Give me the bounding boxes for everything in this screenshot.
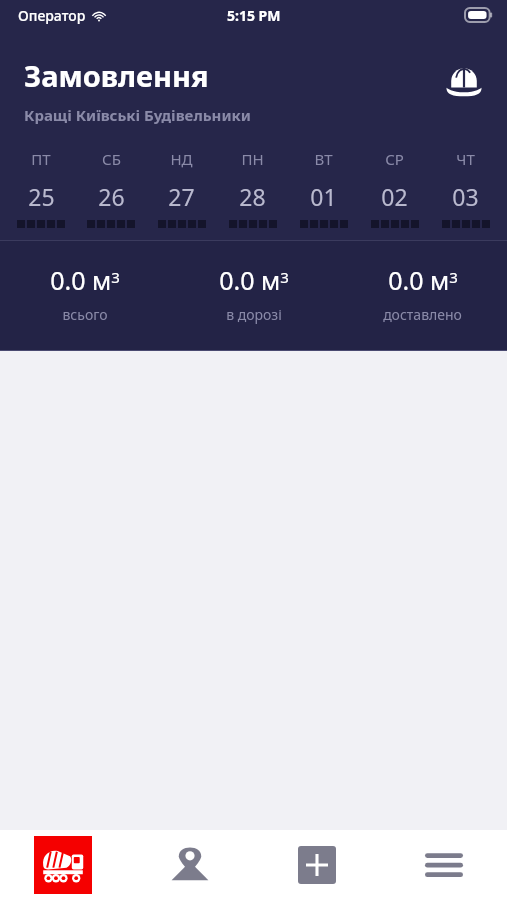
staticText: Кращі Київські Будівельники	[24, 105, 251, 125]
staticText: ПТ	[31, 149, 51, 169]
staticText: ПН	[241, 149, 264, 169]
button[interactable]: СБ	[76, 149, 146, 228]
staticText: 25	[28, 181, 55, 212]
button[interactable]: Map	[126, 830, 253, 900]
staticText: 28	[239, 181, 266, 212]
button[interactable]: ЧТ	[430, 149, 501, 228]
staticText: доставлено	[383, 305, 462, 324]
button[interactable]: ВТ	[288, 149, 359, 228]
button[interactable]: 0.0 м3	[0, 263, 169, 324]
button[interactable]: СР	[359, 149, 430, 228]
button[interactable]: Orders	[0, 830, 126, 900]
button[interactable]: Add order	[253, 830, 380, 900]
staticText: ВТ	[314, 149, 333, 169]
staticText: в дорозі	[226, 305, 282, 324]
button[interactable]: ПН	[217, 149, 288, 228]
staticText: СБ	[102, 149, 121, 169]
staticText: 02	[381, 181, 408, 212]
staticText: 5:15 PM	[227, 6, 281, 25]
staticText: 0.0 м3	[50, 263, 120, 297]
staticText: ЧТ	[456, 149, 475, 169]
staticText: Оператор	[18, 6, 86, 25]
staticText: СР	[385, 149, 404, 169]
staticText: НД	[170, 149, 193, 169]
staticText: 26	[98, 181, 125, 212]
staticText: всього	[62, 305, 108, 324]
staticText: 03	[452, 181, 479, 212]
button[interactable]: 0.0 м3	[169, 263, 338, 324]
button[interactable]: ПТ	[6, 149, 76, 228]
staticText: 01	[310, 181, 337, 212]
staticText: 0.0 м3	[219, 263, 289, 297]
button[interactable]: Menu	[380, 830, 507, 900]
button[interactable]: 0.0 м3	[338, 263, 507, 324]
staticText: 27	[168, 181, 195, 212]
staticText: 0.0 м3	[388, 263, 458, 297]
button[interactable]: Profile	[441, 58, 487, 104]
button[interactable]: НД	[146, 149, 217, 228]
staticText: Замовлення	[24, 56, 209, 95]
